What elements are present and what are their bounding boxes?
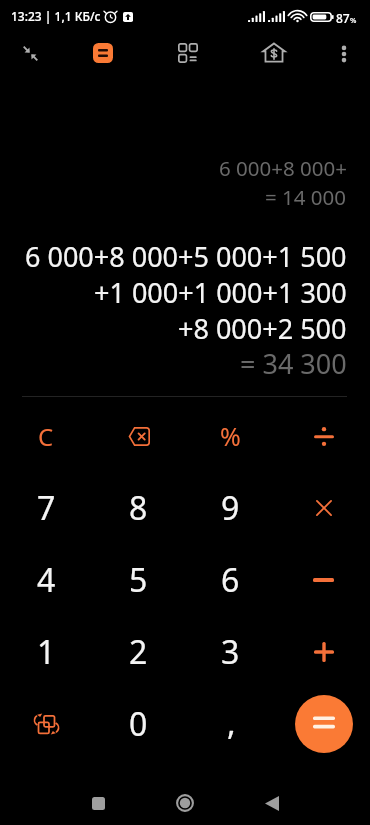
staticText: 7 — [37, 486, 56, 530]
button[interactable]: Calculator — [80, 30, 126, 76]
button[interactable]: Mortgage calculator — [251, 29, 297, 75]
button[interactable]: 2 — [92, 616, 184, 688]
staticText: % — [220, 419, 241, 453]
staticText: 6 000+8 000+ — [219, 154, 347, 182]
staticText: 13:23 | 1,1 КБ/c — [11, 8, 101, 24]
button[interactable]: 1 — [0, 616, 92, 688]
button[interactable]: Unit converter — [165, 30, 211, 76]
button[interactable]: Collapse — [8, 31, 53, 76]
button[interactable]: 8 — [92, 472, 184, 544]
staticText: 5 — [129, 558, 148, 602]
button[interactable]: 6 — [184, 544, 277, 616]
staticText: 1 — [37, 630, 56, 674]
staticText: 87 — [336, 10, 350, 26]
button[interactable]: 7 — [0, 472, 92, 544]
button[interactable]: Plus — [277, 616, 370, 688]
staticText: 4 — [37, 558, 56, 602]
button[interactable]: Backspace — [92, 400, 184, 472]
button[interactable]: Convert — [0, 688, 92, 760]
staticText: 0 — [129, 702, 148, 746]
staticText: 6 — [221, 558, 240, 602]
button[interactable]: Multiply — [277, 472, 370, 544]
button[interactable]: More options — [321, 31, 366, 76]
button[interactable]: Equals — [295, 695, 353, 753]
staticText: = 34 300 — [240, 345, 347, 382]
button[interactable]: Divide — [277, 400, 370, 472]
staticText: , — [227, 701, 236, 745]
button[interactable]: 3 — [184, 616, 277, 688]
button[interactable]: Recents — [75, 780, 121, 825]
button[interactable]: Clear — [0, 400, 92, 472]
button[interactable]: Decimal separator — [184, 688, 277, 760]
staticText: +1 000+1 000+1 300 — [94, 274, 347, 311]
staticText: 3 — [221, 630, 240, 674]
button[interactable]: 4 — [0, 544, 92, 616]
staticText: C — [38, 420, 54, 453]
staticText: 6 000+8 000+5 000+1 500 — [25, 238, 347, 275]
staticText: 9 — [221, 486, 240, 530]
button[interactable]: 0 — [92, 688, 184, 760]
button[interactable]: 5 — [92, 544, 184, 616]
staticText: +8 000+2 500 — [178, 310, 347, 347]
button[interactable]: Percent — [184, 400, 277, 472]
button[interactable]: 9 — [184, 472, 277, 544]
staticText: 2 — [129, 630, 148, 674]
staticText: = 14 000 — [265, 183, 347, 211]
button[interactable]: Back — [249, 780, 295, 825]
staticText: % — [350, 15, 357, 25]
staticText: 8 — [129, 486, 148, 530]
button[interactable]: Minus — [277, 544, 370, 616]
button[interactable]: Home — [162, 780, 208, 825]
